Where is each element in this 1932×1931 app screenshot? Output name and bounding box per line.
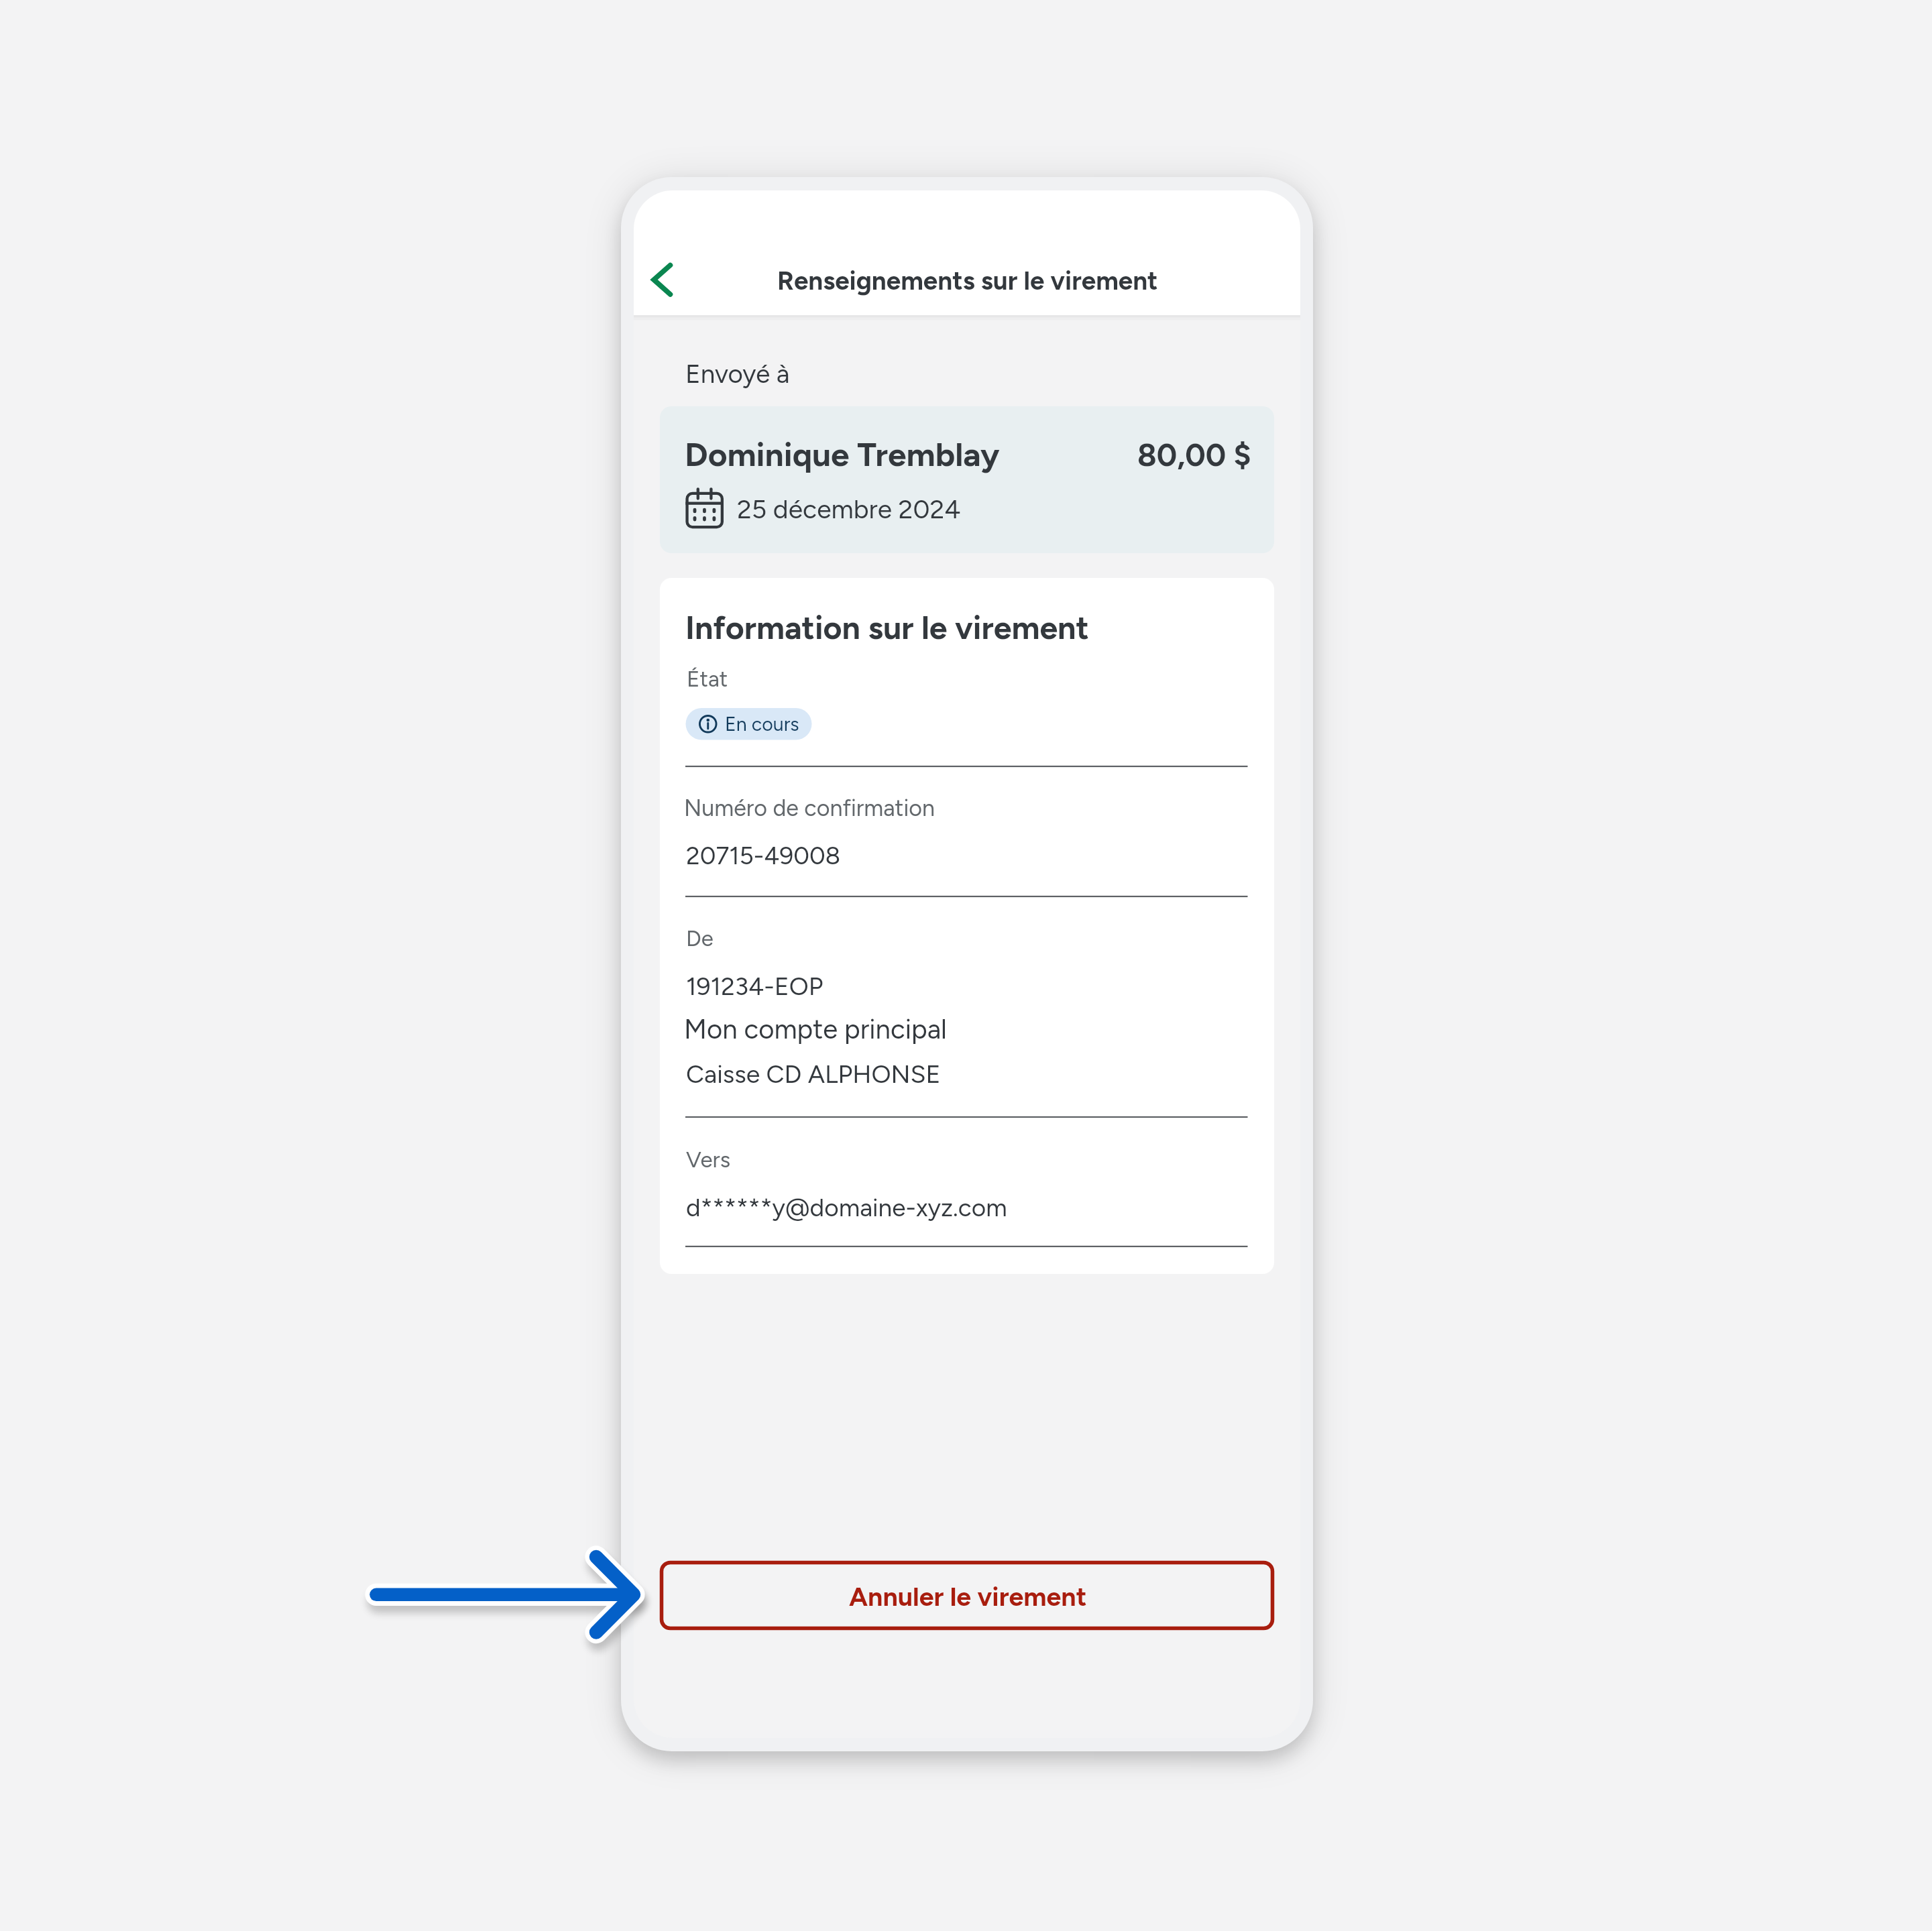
staticText: Annuler le virement <box>849 1581 1087 1613</box>
staticText: Vers <box>686 1147 731 1173</box>
staticText: 80,00 $ <box>1137 436 1251 473</box>
staticText: 25 décembre 2024 <box>737 493 961 525</box>
staticText: Caisse CD ALPHONSE <box>686 1059 941 1089</box>
button[interactable] <box>660 1561 1275 1631</box>
staticText: Renseignements sur le virement <box>777 265 1158 296</box>
staticText: Mon compte principal <box>684 1013 947 1045</box>
staticText: État <box>687 666 728 693</box>
staticText: Envoyé à <box>685 358 790 389</box>
button[interactable]: Retour <box>637 236 701 322</box>
staticText: Dominique Tremblay <box>685 434 1000 474</box>
staticText: 191234-EOP <box>686 972 823 1002</box>
staticText: d******y@domaine-xyz.com <box>686 1193 1007 1222</box>
staticText: De <box>686 925 714 952</box>
staticText: Information sur le virement <box>685 608 1089 647</box>
staticText: Numéro de confirmation <box>684 795 935 822</box>
staticText: En cours <box>725 713 799 736</box>
staticText: 20715-49008 <box>686 841 841 870</box>
